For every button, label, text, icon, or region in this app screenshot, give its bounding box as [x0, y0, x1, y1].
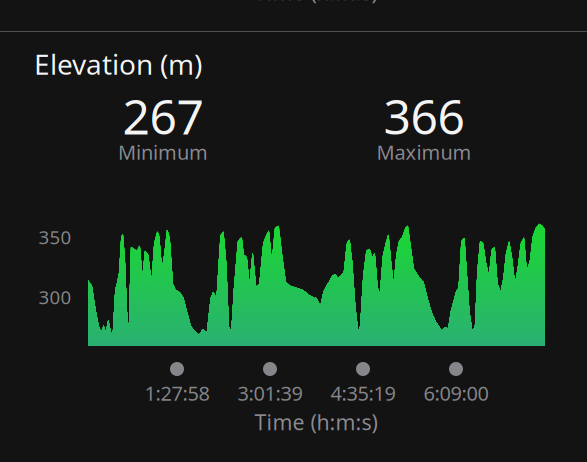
staticText: Maximum [376, 139, 471, 165]
staticText: Time (h:m:s) [254, 0, 377, 6]
staticText: 6:09:00 [423, 380, 488, 406]
staticText: 4:35:19 [330, 380, 395, 406]
staticText: 350 [38, 225, 71, 249]
staticText: 1:27:58 [144, 380, 209, 406]
staticText: 3:01:39 [237, 380, 302, 406]
staticText: Time (h:m:s) [254, 408, 377, 436]
staticText: Minimum [118, 139, 208, 165]
staticText: Elevation (m) [34, 45, 202, 83]
staticText: 300 [38, 285, 71, 309]
staticText: 366 [383, 84, 464, 148]
staticText: 267 [122, 84, 203, 148]
